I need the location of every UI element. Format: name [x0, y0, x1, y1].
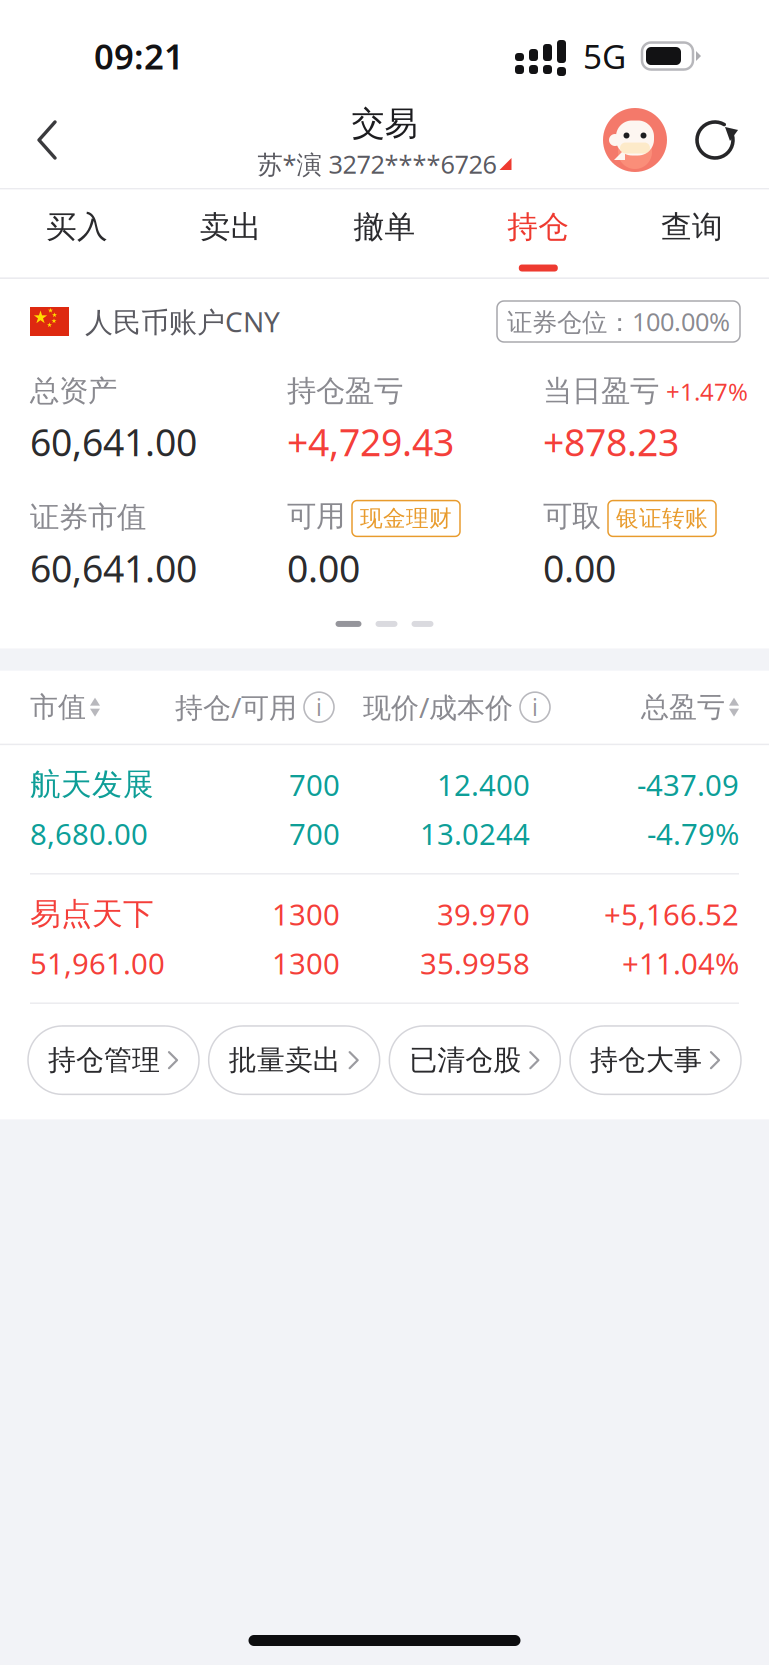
button[interactable]: 航天发展 — [0, 745, 769, 873]
staticText: 证券仓位：100.00% — [507, 305, 730, 338]
staticText: 总资产 — [30, 373, 117, 409]
staticText: +1.47% — [666, 375, 748, 407]
button[interactable]: 持仓 — [461, 189, 615, 277]
staticText: 可取 — [543, 498, 601, 534]
staticText: 可用 — [287, 498, 345, 534]
staticText: +878.23 — [543, 417, 679, 467]
button[interactable]: 刷新 — [677, 92, 755, 188]
staticText: i — [316, 692, 322, 722]
staticText: 700 — [289, 814, 340, 853]
button[interactable]: 卖出 — [154, 189, 308, 277]
staticText: 持仓盈亏 — [287, 373, 403, 409]
staticText: +5,166.52 — [604, 895, 739, 934]
staticText: +4,729.43 — [287, 417, 454, 467]
staticText: 8,680.00 — [30, 814, 148, 853]
button[interactable]: 用户头像 — [593, 108, 677, 172]
button[interactable]: 返回 — [4, 92, 90, 188]
staticText: 买入 — [46, 208, 108, 246]
staticText: 1300 — [272, 895, 340, 934]
staticText: 撤单 — [353, 208, 415, 246]
staticText: 1300 — [272, 943, 340, 982]
button[interactable]: 已清仓股 — [389, 1026, 560, 1094]
staticText: 5G — [583, 34, 626, 78]
staticText: 60,641.00 — [30, 417, 197, 467]
staticText: 查询 — [661, 208, 723, 246]
staticText: 持仓/可用 — [175, 689, 297, 726]
button[interactable]: 持仓管理 — [28, 1026, 199, 1094]
staticText: 批量卖出 — [229, 1043, 341, 1077]
staticText: 现金理财 — [360, 505, 452, 532]
staticText: 39.970 — [437, 895, 530, 934]
staticText: 现价/成本价 — [363, 689, 513, 726]
staticText: 航天发展 — [30, 766, 154, 803]
staticText: -4.79% — [647, 814, 739, 853]
staticText: 持仓 — [507, 208, 569, 246]
button[interactable]: 易点天下 — [0, 875, 769, 1002]
staticText: 证券市值 — [30, 499, 146, 535]
button[interactable]: 批量卖出 — [209, 1026, 380, 1094]
staticText: 0.00 — [287, 543, 360, 593]
staticText: 卖出 — [200, 208, 262, 246]
staticText: 总盈亏 — [641, 690, 725, 724]
button[interactable]: 买入 — [0, 189, 154, 277]
staticText: -437.09 — [637, 765, 739, 804]
staticText: 市值 — [30, 690, 86, 724]
staticText: 人民币账户CNY — [85, 303, 280, 340]
button[interactable]: 撤单 — [308, 189, 461, 277]
staticText: +11.04% — [622, 943, 739, 982]
staticText: 60,641.00 — [30, 543, 197, 593]
staticText: 13.0244 — [420, 814, 530, 853]
button[interactable]: 查询 — [615, 189, 769, 277]
staticText: 当日盈亏 — [543, 373, 659, 409]
staticText: 交易 — [351, 103, 417, 144]
button[interactable]: 持仓大事 — [570, 1026, 741, 1094]
staticText: 12.400 — [437, 765, 530, 804]
staticText: 0.00 — [543, 543, 616, 593]
staticText: 苏*演 3272****6726 — [257, 147, 496, 181]
staticText: 35.9958 — [420, 943, 530, 982]
staticText: i — [532, 692, 538, 722]
staticText: 易点天下 — [30, 895, 154, 933]
staticText: 51,961.00 — [30, 943, 165, 982]
staticText: 09:21 — [94, 33, 184, 79]
staticText: 700 — [289, 765, 340, 804]
staticText: 银证转账 — [616, 505, 708, 532]
staticText: 持仓管理 — [48, 1043, 160, 1077]
button[interactable]: 证券仓位：100.00% — [497, 301, 740, 342]
staticText: 已清仓股 — [409, 1043, 521, 1077]
staticText: 持仓大事 — [590, 1043, 702, 1077]
